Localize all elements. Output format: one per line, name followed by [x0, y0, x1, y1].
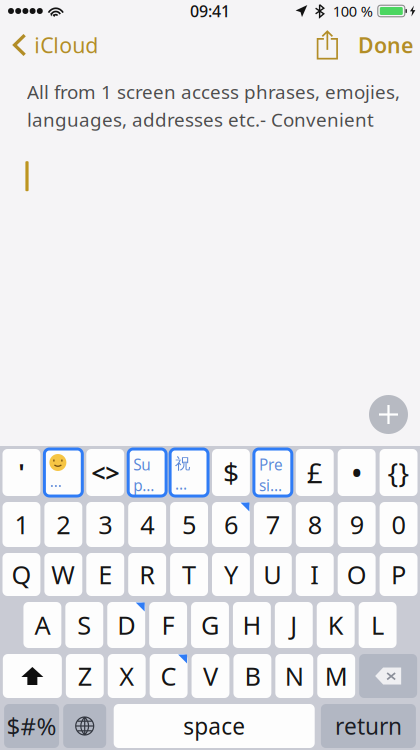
- button[interactable]: space: [114, 704, 315, 748]
- staticText: ': [18, 457, 24, 488]
- button[interactable]: 2: [44, 502, 82, 547]
- button[interactable]: C: [150, 654, 188, 698]
- button[interactable]: Emoji snippet: [44, 449, 82, 496]
- staticText: <>: [91, 455, 119, 490]
- staticText: £: [307, 453, 323, 491]
- button[interactable]: Delete: [359, 654, 417, 698]
- button[interactable]: return: [321, 704, 416, 748]
- button[interactable]: iCloud: [0, 22, 108, 68]
- button[interactable]: I: [296, 553, 334, 596]
- staticText: …: [175, 473, 187, 494]
- button[interactable]: 5: [170, 502, 208, 547]
- staticText: return: [335, 711, 402, 741]
- staticText: M: [325, 659, 348, 693]
- button[interactable]: V: [192, 654, 229, 698]
- staticText: J: [290, 608, 297, 642]
- button[interactable]: D: [107, 602, 145, 648]
- button[interactable]: Q: [2, 553, 40, 596]
- button[interactable]: P: [380, 553, 417, 596]
- button[interactable]: N: [275, 654, 313, 698]
- staticText: 6: [224, 507, 238, 542]
- button[interactable]: J: [275, 602, 313, 648]
- button[interactable]: K: [317, 602, 355, 648]
- button[interactable]: 8: [296, 502, 334, 547]
- staticText: Z: [78, 659, 92, 693]
- staticText: G: [201, 608, 219, 642]
- staticText: 100 %: [333, 1, 373, 21]
- button[interactable]: E: [86, 553, 124, 596]
- staticText: 4: [140, 507, 154, 542]
- button[interactable]: Su: [128, 449, 166, 496]
- staticText: L: [371, 608, 384, 642]
- button[interactable]: A: [23, 602, 61, 648]
- staticText: O: [347, 557, 367, 592]
- staticText: iCloud: [34, 30, 98, 60]
- staticText: R: [139, 557, 155, 592]
- button[interactable]: X: [108, 654, 146, 698]
- button[interactable]: <>: [86, 449, 124, 496]
- button[interactable]: H: [233, 602, 271, 648]
- button[interactable]: 7: [254, 502, 292, 547]
- button[interactable]: $#%: [4, 704, 59, 748]
- button[interactable]: 0: [380, 502, 417, 547]
- staticText: 祝: [175, 454, 190, 473]
- button[interactable]: O: [338, 553, 376, 596]
- button[interactable]: Y: [212, 553, 250, 596]
- staticText: languages, addresses etc.- Convenient: [27, 107, 374, 132]
- button[interactable]: R: [128, 553, 166, 596]
- button[interactable]: •: [338, 449, 376, 496]
- button[interactable]: 1: [2, 502, 40, 547]
- button[interactable]: B: [233, 654, 271, 698]
- staticText: •: [351, 451, 363, 494]
- button[interactable]: 9: [338, 502, 376, 547]
- staticText: S: [77, 608, 91, 642]
- button[interactable]: Add attachment: [369, 395, 408, 434]
- staticText: 5: [182, 507, 196, 542]
- staticText: F: [162, 608, 175, 642]
- button[interactable]: 祝: [170, 449, 208, 496]
- button[interactable]: S: [65, 602, 103, 648]
- button[interactable]: Done: [346, 22, 420, 68]
- staticText: {}: [388, 453, 410, 491]
- staticText: 9: [350, 507, 364, 542]
- button[interactable]: 6: [212, 502, 250, 547]
- button[interactable]: G: [191, 602, 229, 648]
- staticText: P: [391, 557, 406, 592]
- staticText: p…: [133, 475, 154, 496]
- button[interactable]: L: [359, 602, 397, 648]
- button[interactable]: M: [317, 654, 355, 698]
- button[interactable]: W: [44, 553, 82, 596]
- staticText: All from 1 screen access phrases, emojie…: [27, 79, 400, 105]
- button[interactable]: T: [170, 553, 208, 596]
- button[interactable]: F: [149, 602, 187, 648]
- button[interactable]: $: [212, 449, 250, 496]
- button[interactable]: 4: [128, 502, 166, 547]
- button[interactable]: £: [296, 449, 334, 496]
- staticText: H: [242, 608, 261, 642]
- staticText: 2: [56, 507, 70, 542]
- staticText: B: [244, 659, 260, 693]
- button[interactable]: Shift: [3, 654, 62, 698]
- staticText: 0: [392, 507, 406, 542]
- staticText: C: [161, 659, 177, 693]
- staticText: X: [119, 659, 134, 693]
- staticText: D: [117, 608, 135, 642]
- staticText: T: [182, 557, 196, 592]
- button[interactable]: ': [2, 449, 40, 496]
- button[interactable]: Share: [303, 22, 346, 68]
- staticText: Su: [133, 454, 150, 475]
- button[interactable]: Z: [66, 654, 104, 698]
- staticText: A: [34, 608, 50, 642]
- staticText: V: [203, 659, 218, 693]
- button[interactable]: Pre: [254, 449, 292, 496]
- button[interactable]: U: [254, 553, 292, 596]
- staticText: 1: [14, 507, 28, 542]
- staticText: 7: [266, 507, 280, 542]
- staticText: I: [310, 557, 319, 592]
- staticText: si…: [259, 475, 282, 496]
- staticText: U: [263, 557, 282, 592]
- button[interactable]: Next keyboard: [63, 704, 106, 748]
- button[interactable]: 3: [86, 502, 124, 547]
- staticText: $#%: [7, 710, 57, 742]
- button[interactable]: {}: [380, 449, 417, 496]
